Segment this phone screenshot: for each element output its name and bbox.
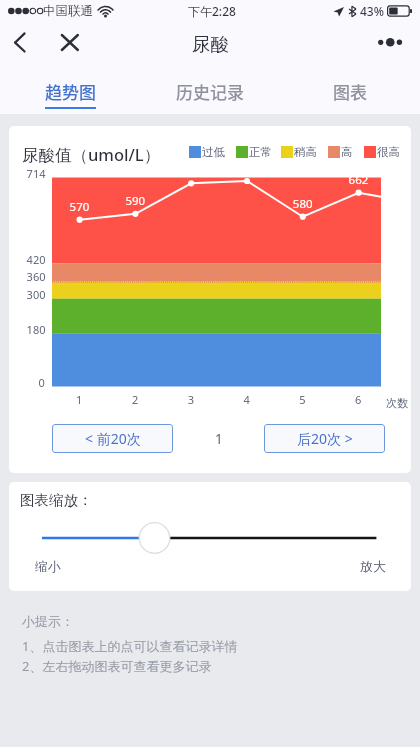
button[interactable]: Back bbox=[7, 29, 37, 59]
button[interactable]: 后20次 > bbox=[264, 424, 385, 453]
staticText: 2、左右拖动图表可查看更多记录 bbox=[22, 657, 212, 675]
staticText: 下午2:28 bbox=[188, 3, 236, 19]
staticText: 缩小 bbox=[35, 558, 61, 574]
staticText: 43% bbox=[360, 3, 384, 19]
staticText: 正常 bbox=[249, 145, 272, 159]
staticText: 图表 bbox=[333, 79, 367, 104]
staticText: 尿酸 bbox=[192, 33, 229, 56]
staticText: 尿酸值（umol/L） bbox=[22, 143, 161, 166]
staticText: 小提示： bbox=[22, 613, 74, 629]
staticText: < 前20次 bbox=[85, 429, 141, 448]
staticText: 过低 bbox=[202, 145, 225, 159]
button[interactable]: < 前20次 bbox=[52, 424, 173, 453]
button[interactable]: 趋势图 bbox=[0, 68, 140, 114]
staticText: 历史记录 bbox=[176, 79, 244, 104]
button[interactable]: 图表 bbox=[280, 68, 420, 114]
staticText: 高 bbox=[341, 145, 353, 159]
staticText: 1、点击图表上的点可以查看记录详情 bbox=[22, 637, 238, 655]
staticText: 趋势图 bbox=[45, 79, 96, 104]
staticText: 1 bbox=[215, 430, 223, 448]
staticText: 后20次 > bbox=[297, 429, 353, 448]
button[interactable]: 历史记录 bbox=[140, 68, 280, 114]
staticText: 很高 bbox=[377, 145, 400, 159]
staticText: 稍高 bbox=[294, 145, 317, 159]
button[interactable]: Close bbox=[55, 29, 85, 59]
staticText: 图表缩放： bbox=[20, 491, 93, 509]
staticText: 放大 bbox=[360, 558, 386, 574]
button[interactable] bbox=[36, 520, 380, 556]
staticText: 中国联通 bbox=[43, 3, 93, 19]
button[interactable]: More options bbox=[372, 29, 408, 59]
